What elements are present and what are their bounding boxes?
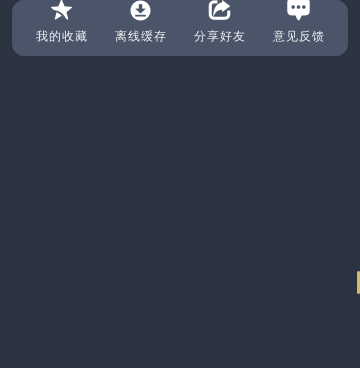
button[interactable]: 离线缓存 — [101, 0, 180, 56]
button[interactable]: 意见反馈 — [259, 0, 338, 56]
staticText: 意见反馈 — [273, 29, 324, 44]
button[interactable]: 分享好友 — [180, 0, 259, 56]
button[interactable]: 我的收藏 — [22, 0, 101, 56]
button[interactable]: 打开侧边栏 — [357, 271, 360, 294]
staticText: 分享好友 — [194, 29, 245, 44]
staticText: 我的收藏 — [36, 29, 87, 44]
staticText: 离线缓存 — [115, 29, 166, 44]
